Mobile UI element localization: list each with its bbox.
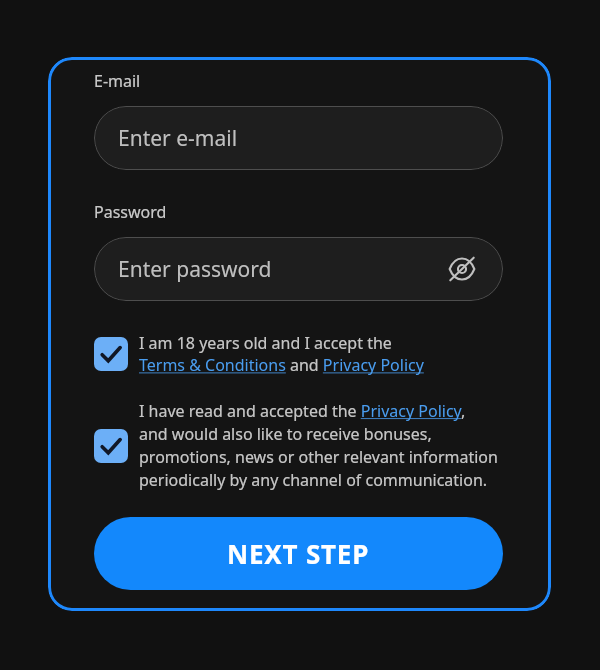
button[interactable]: Show password: [445, 252, 479, 286]
button[interactable]: Enter password: [94, 237, 503, 301]
staticText: Enter e-mail: [118, 124, 238, 153]
button[interactable]: Enter e-mail: [94, 106, 503, 170]
staticText: I have read and accepted the Privacy Pol…: [139, 400, 498, 491]
staticText: NEXT STEP: [227, 536, 370, 571]
button[interactable]: [94, 337, 128, 371]
button[interactable]: I am 18 years old and I accept the Terms…: [94, 332, 503, 376]
staticText: Enter password: [118, 255, 272, 284]
button[interactable]: NEXT STEP: [94, 517, 503, 590]
button[interactable]: I have read and accepted the Privacy Pol…: [94, 400, 503, 491]
staticText: E-mail: [94, 70, 141, 92]
staticText: Password: [94, 201, 167, 223]
staticText: I am 18 years old and I accept the Terms…: [139, 332, 424, 376]
button[interactable]: [94, 429, 128, 463]
